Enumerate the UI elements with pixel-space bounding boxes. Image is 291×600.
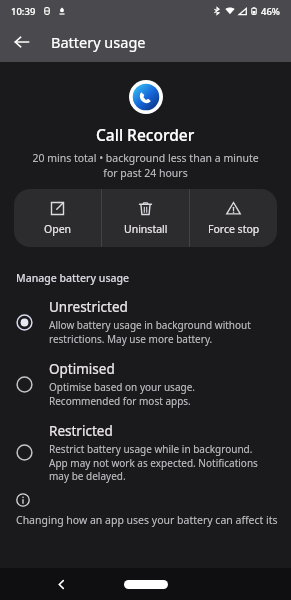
staticText: 20 mins total • background less than a m… bbox=[0, 151, 291, 180]
staticText: Uninstall bbox=[124, 222, 168, 236]
staticText: Restrict battery usage while in backgrou… bbox=[49, 442, 258, 483]
staticText: Call Recorder bbox=[96, 124, 195, 145]
button[interactable]: Unrestricted bbox=[0, 298, 291, 346]
button[interactable]: Restricted bbox=[0, 422, 291, 483]
button[interactable]: Back bbox=[56, 579, 67, 590]
staticText: Unrestricted bbox=[49, 298, 128, 316]
button[interactable]: Optimised bbox=[0, 360, 291, 408]
button[interactable]: Back bbox=[5, 25, 39, 59]
staticText: Force stop bbox=[208, 222, 260, 236]
staticText: 10:39 bbox=[11, 5, 36, 18]
staticText: Allow battery usage in background withou… bbox=[49, 318, 251, 346]
button[interactable]: Force stop bbox=[190, 189, 277, 247]
button[interactable]: Uninstall bbox=[102, 189, 189, 247]
staticText: Manage battery usage bbox=[16, 271, 130, 285]
button[interactable]: Open bbox=[14, 189, 101, 247]
staticText: Restricted bbox=[49, 422, 113, 440]
button[interactable]: Home bbox=[124, 580, 168, 589]
staticText: Optimised bbox=[49, 360, 115, 378]
staticText: Open bbox=[44, 222, 72, 236]
staticText: Optimise based on your usage. Recommende… bbox=[49, 380, 195, 408]
staticText: 46% bbox=[261, 5, 280, 18]
staticText: Battery usage bbox=[51, 32, 146, 52]
staticText: Changing how an app uses your battery ca… bbox=[16, 513, 278, 527]
